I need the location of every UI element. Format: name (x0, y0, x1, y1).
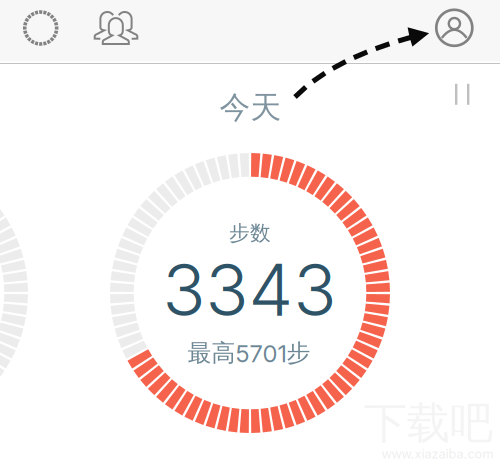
staticText: 步数 (229, 220, 271, 246)
staticText: 最高5701步 (187, 338, 310, 368)
button[interactable]: Status ring (21, 8, 61, 48)
button[interactable]: Friends (95, 12, 137, 45)
button[interactable]: Pause (455, 84, 469, 105)
button[interactable]: Profile (434, 8, 474, 48)
staticText: 今天 (219, 88, 281, 127)
staticText: 3343 (162, 247, 336, 333)
staticText: 下载吧 (364, 396, 493, 451)
staticText: www.xiazaiba.com (381, 446, 493, 461)
